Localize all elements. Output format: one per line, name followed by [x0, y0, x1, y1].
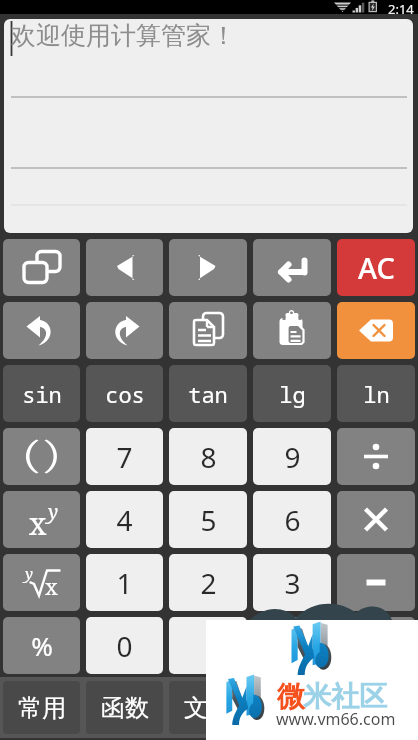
staticText: 设置: [352, 693, 400, 723]
button[interactable]: Copy: [169, 302, 247, 359]
button[interactable]: =: [253, 617, 331, 674]
button[interactable]: 单位: [253, 681, 331, 734]
button[interactable]: Enter: [253, 239, 331, 296]
button[interactable]: 5: [169, 491, 247, 548]
button[interactable]: y-th root of x: [3, 554, 80, 611]
staticText: x: [45, 571, 58, 601]
staticText: %: [31, 628, 53, 663]
staticText: =: [284, 627, 301, 665]
button[interactable]: 2: [169, 554, 247, 611]
staticText: 2: [200, 564, 217, 602]
button[interactable]: 文本: [169, 681, 247, 734]
button[interactable]: Move left: [86, 239, 163, 296]
button[interactable]: tan: [169, 365, 247, 422]
button[interactable]: Move right: [169, 239, 247, 296]
staticText: 文本: [184, 693, 232, 723]
staticText: 7: [116, 438, 133, 476]
staticText: ln: [363, 379, 390, 409]
button[interactable]: Redo: [86, 302, 163, 359]
button[interactable]: 设置: [337, 681, 415, 734]
button[interactable]: Backspace: [337, 302, 415, 359]
button[interactable]: 7: [86, 428, 163, 485]
button[interactable]: Paste: [253, 302, 331, 359]
button[interactable]: 3: [253, 554, 331, 611]
staticText: 单位: [268, 693, 316, 723]
staticText: 3: [284, 564, 301, 602]
button[interactable]: 6: [253, 491, 331, 548]
staticText: .: [204, 627, 212, 665]
staticText: x: [29, 503, 47, 544]
button[interactable]: cos: [86, 365, 163, 422]
button[interactable]: ln: [337, 365, 415, 422]
staticText: 2:14: [388, 0, 414, 14]
button[interactable]: .: [169, 617, 247, 674]
staticText: www.vm66.com: [276, 708, 396, 730]
staticText: 米社区: [303, 679, 387, 714]
staticText: 8: [200, 438, 217, 476]
button[interactable]: Plus: [337, 617, 415, 674]
button[interactable]: 8: [169, 428, 247, 485]
staticText: 9: [284, 438, 301, 476]
button[interactable]: 函数: [86, 681, 163, 734]
staticText: y: [48, 499, 59, 525]
button[interactable]: 1: [86, 554, 163, 611]
button[interactable]: 9: [253, 428, 331, 485]
button[interactable]: 4: [86, 491, 163, 548]
button[interactable]: Minus: [337, 554, 415, 611]
staticText: 5: [200, 501, 217, 539]
button[interactable]: Parentheses: [3, 428, 80, 485]
staticText: 函数: [101, 693, 149, 723]
button[interactable]: sin: [3, 365, 80, 422]
staticText: y: [25, 563, 33, 583]
button[interactable]: x to the power of y: [3, 491, 80, 548]
staticText: lg: [279, 379, 306, 409]
button[interactable]: AC: [337, 239, 415, 296]
staticText: 0: [116, 627, 133, 665]
staticText: 4: [116, 501, 133, 539]
staticText: cos: [105, 379, 145, 409]
button[interactable]: lg: [253, 365, 331, 422]
staticText: 常用: [18, 693, 66, 723]
staticText: sin: [22, 379, 62, 409]
button[interactable]: %: [3, 617, 80, 674]
button[interactable]: Screens: [3, 239, 80, 296]
button[interactable]: 0: [86, 617, 163, 674]
staticText: tan: [188, 379, 228, 409]
staticText: 1: [116, 564, 133, 602]
staticText: 欢迎使用计算管家！: [11, 20, 236, 51]
staticText: 6: [284, 501, 301, 539]
button[interactable]: Undo: [3, 302, 80, 359]
button[interactable]: 常用: [3, 681, 80, 734]
staticText: 微: [277, 679, 305, 714]
staticText: AC: [358, 248, 395, 287]
button[interactable]: Multiply: [337, 491, 415, 548]
button[interactable]: Divide: [337, 428, 415, 485]
